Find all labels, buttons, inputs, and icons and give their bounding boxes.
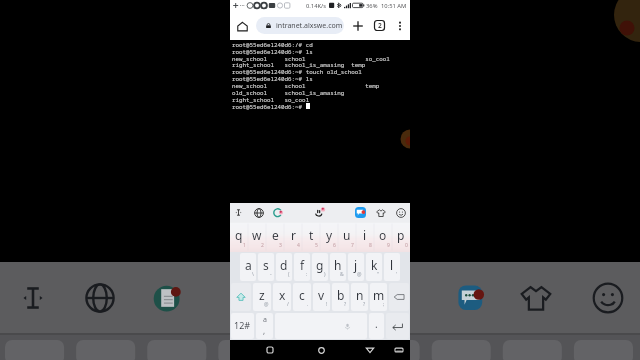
button[interactable]: l [384,253,400,281]
button[interactable]: e [266,222,284,252]
staticText: . [375,317,378,331]
staticText: ) [324,271,326,278]
button[interactable]: Enter [386,313,409,339]
staticText: t [309,227,314,243]
staticText: f [300,257,305,273]
staticText: @ [357,271,362,278]
staticText: 4 [297,242,300,249]
staticText: m [373,287,385,303]
button[interactable]: q [230,222,248,252]
button[interactable]: Emoji [392,203,409,222]
staticText: 12# [234,319,251,331]
staticText: d [280,257,288,273]
button[interactable]: Symbols [256,313,273,339]
button[interactable]: d [276,253,292,281]
staticText: 10:51 AM [381,2,407,10]
staticText: 6 [333,242,336,249]
staticText: right_school so_cool [232,96,310,104]
button[interactable]: More options [393,19,407,33]
staticText: s [263,257,269,273]
staticText: ? [363,301,366,308]
button[interactable]: j [348,253,364,281]
staticText: e [272,227,279,243]
staticText: / [287,301,289,308]
staticText: - [270,271,272,278]
button[interactable]: Cursor control [230,203,247,222]
staticText: b [337,287,345,303]
button[interactable]: t [302,222,320,252]
button[interactable]: Shift [231,283,251,311]
staticText: new_school school so_cool [232,55,390,63]
staticText: 1 [243,242,246,249]
staticText: root@55ed6e1240d6:~# touch old_school [232,68,362,76]
button[interactable]: Home [234,18,250,34]
button[interactable]: i [356,222,374,252]
button[interactable]: n [351,283,368,311]
button[interactable]: u [338,222,356,252]
button[interactable]: v [313,283,330,311]
button[interactable]: intranet.alxswe.com [256,17,344,34]
staticText: a [245,257,252,273]
button[interactable]: w [248,222,266,252]
button[interactable]: c [293,283,311,311]
staticText: i [363,227,367,243]
staticText: intranet.alxswe.com [276,21,343,31]
button[interactable]: a [240,253,256,281]
staticText: y [326,227,333,243]
staticText: z [259,287,265,303]
button[interactable]: Back [361,340,379,360]
button[interactable]: Recents [261,340,279,360]
button[interactable]: p [392,222,410,252]
staticText: : [306,271,308,278]
staticText: a [263,315,267,325]
button[interactable]: Hide keyboard [390,340,408,360]
button[interactable]: Stickers [372,203,389,222]
button[interactable]: x [273,283,291,311]
button[interactable]: Home [312,340,330,360]
button[interactable]: r [284,222,302,252]
staticText: 3 [279,242,282,249]
staticText: q [235,227,243,243]
staticText: 0.14K/s [306,2,327,10]
button[interactable]: Tabs [371,17,388,34]
staticText: g [316,257,324,273]
button[interactable]: k [366,253,382,281]
staticText: 9 [387,242,390,249]
staticText: 2 [261,242,264,249]
button[interactable]: b [332,283,349,311]
staticText: p [397,227,405,243]
staticText: ; [383,301,385,308]
staticText: r [291,227,296,243]
staticText: v [318,287,325,303]
button[interactable]: 12# [231,313,254,339]
staticText: 5 [315,242,318,249]
button[interactable]: Voice input [311,203,328,222]
button[interactable]: z [253,283,271,311]
button[interactable]: . [369,313,384,339]
staticText: & [340,271,344,278]
button[interactable]: Themes [269,203,286,222]
button[interactable]: Change language [250,203,267,222]
button[interactable]: y [320,222,338,252]
button[interactable]: o [374,222,392,252]
staticText: ' [396,271,398,278]
button[interactable]: g [312,253,328,281]
staticText: j [354,257,358,273]
staticText: . [307,301,309,308]
staticText: old_school school_is_amasing [232,89,345,97]
staticText: \ [252,271,254,278]
button[interactable]: f [294,253,310,281]
button[interactable]: Chat [352,203,369,222]
staticText: 36% [366,2,378,10]
button[interactable]: Backspace [389,283,409,311]
staticText: w [252,227,262,243]
staticText: l [390,257,394,273]
button[interactable]: s [258,253,274,281]
button[interactable]: m [370,283,387,311]
staticText: ? [344,301,347,308]
staticText: 8 [369,242,372,249]
staticText: right_school school_is_amasing temp [232,61,366,69]
button[interactable]: New tab [349,17,366,34]
button[interactable]: h [330,253,346,281]
